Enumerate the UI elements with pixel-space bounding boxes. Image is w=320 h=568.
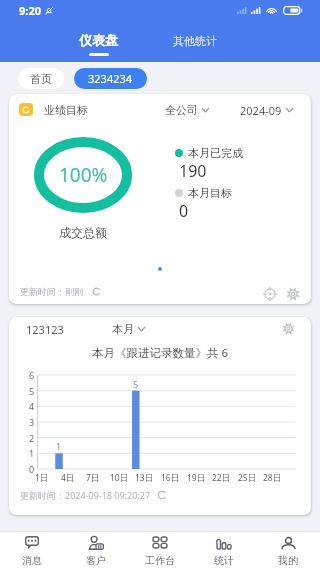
staticText: 本月《跟进记录数量》共 6 xyxy=(92,345,229,360)
staticText: 9:20 xyxy=(19,3,41,18)
button[interactable]: Settings xyxy=(282,322,295,335)
button[interactable]: 仪表盘 xyxy=(70,24,126,58)
staticText: 4 xyxy=(29,400,35,412)
button[interactable]: 首页 xyxy=(18,68,64,89)
button[interactable]: Settings xyxy=(286,287,300,301)
staticText: 本月目标 xyxy=(188,186,232,199)
staticText: 2024-09 xyxy=(240,103,282,116)
staticText: 0 xyxy=(29,463,35,475)
staticText: 全公司 xyxy=(165,103,198,116)
staticText: 22日 xyxy=(212,472,231,484)
staticText: 成交总额 xyxy=(59,225,107,240)
staticText: 更新时间：2024-09-18 09:20:27 xyxy=(20,489,151,501)
button[interactable]: 客户 xyxy=(64,532,128,568)
button[interactable]: 统计 xyxy=(192,532,256,568)
staticText: 10日 xyxy=(110,472,129,484)
staticText: 123123 xyxy=(26,322,64,335)
button[interactable]: 其他统计 xyxy=(160,24,230,54)
staticText: 消息 xyxy=(22,554,42,567)
staticText: 本月 xyxy=(112,322,134,335)
staticText: 1日 xyxy=(35,472,49,484)
staticText: 3234234 xyxy=(88,71,133,86)
staticText: 仪表盘 xyxy=(79,32,118,48)
staticText: 6 xyxy=(29,369,35,381)
staticText: 7日 xyxy=(86,472,100,484)
button[interactable]: Locate xyxy=(262,286,278,302)
staticText: 2 xyxy=(29,432,35,444)
staticText: 首页 xyxy=(30,72,52,86)
staticText: 100% xyxy=(59,162,108,188)
staticText: 25日 xyxy=(238,472,257,484)
staticText: 我的 xyxy=(278,554,298,567)
button[interactable]: 3234234 xyxy=(74,68,147,89)
staticText: 5 xyxy=(133,378,139,390)
staticText: 更新时间：刚刚 xyxy=(20,286,83,297)
button[interactable]: 2024-09 xyxy=(240,103,293,116)
staticText: 3 xyxy=(29,416,35,428)
staticText: 19日 xyxy=(187,472,206,484)
staticText: 13日 xyxy=(135,472,154,484)
staticText: 1 xyxy=(29,447,35,459)
staticText: 工作台 xyxy=(145,554,175,567)
button[interactable]: 本月 xyxy=(112,322,145,335)
staticText: 16日 xyxy=(161,472,180,484)
staticText: 本月已完成 xyxy=(188,146,243,159)
staticText: 4日 xyxy=(61,472,75,484)
staticText: 190 xyxy=(179,160,207,182)
button[interactable]: 消息 xyxy=(0,532,64,568)
staticText: 其他统计 xyxy=(173,34,217,48)
button[interactable]: 全公司 xyxy=(165,103,209,116)
staticText: 客户 xyxy=(86,554,106,567)
staticText: 业绩目标 xyxy=(44,103,88,116)
staticText: 统计 xyxy=(214,554,234,567)
staticText: 1 xyxy=(56,440,62,452)
button[interactable]: 工作台 xyxy=(128,532,192,568)
staticText: 5 xyxy=(29,385,35,397)
staticText: 28日 xyxy=(263,472,282,484)
button[interactable]: 我的 xyxy=(256,532,320,568)
staticText: 0 xyxy=(179,200,189,222)
